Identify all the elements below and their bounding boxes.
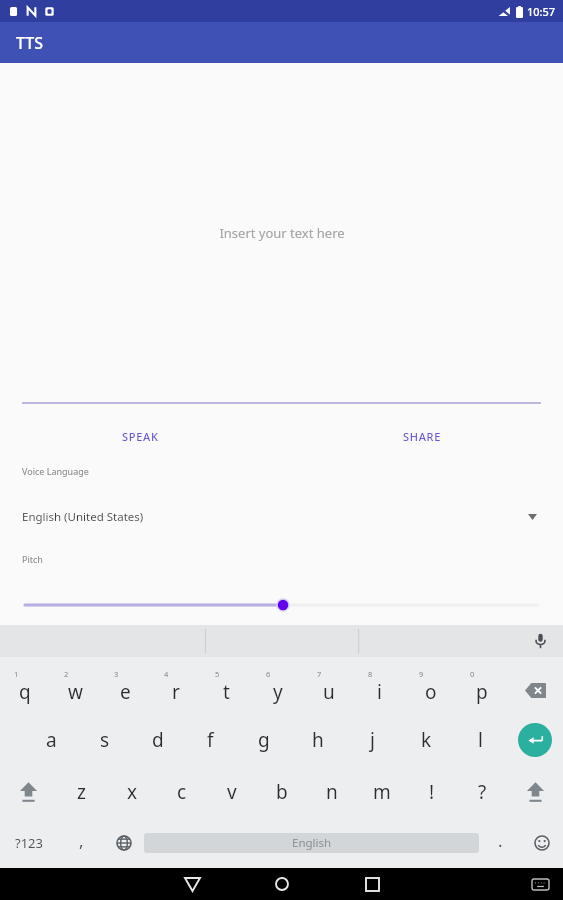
button[interactable]: Back <box>178 870 206 898</box>
button[interactable]: j <box>345 714 399 766</box>
button[interactable]: , <box>58 818 104 868</box>
staticText: ! <box>429 779 435 805</box>
button[interactable]: ?123 <box>0 818 58 868</box>
button[interactable]: 4 <box>150 661 201 714</box>
button[interactable]: 7 <box>303 661 354 714</box>
staticText: t <box>223 679 230 705</box>
staticText: u <box>323 679 335 705</box>
staticText: a <box>46 727 57 753</box>
button[interactable]: ! <box>407 766 457 818</box>
button[interactable]: h <box>291 714 345 766</box>
staticText: 1 <box>14 669 19 679</box>
button[interactable]: Insert your text here <box>0 63 563 402</box>
staticText: 10:57 <box>527 4 556 19</box>
staticText: h <box>312 727 324 753</box>
staticText: 5 <box>215 669 220 679</box>
button[interactable]: 1 <box>0 661 50 714</box>
button[interactable]: English <box>144 833 479 853</box>
staticText: . <box>498 829 503 852</box>
staticText: 3 <box>114 669 119 679</box>
staticText: 9 <box>419 669 424 679</box>
button[interactable]: s <box>78 714 131 766</box>
staticText: p <box>476 679 488 705</box>
staticText: SPEAK <box>122 429 159 444</box>
button[interactable]: 5 <box>201 661 252 714</box>
staticText: j <box>370 727 375 753</box>
button[interactable]: Pitch slider <box>0 595 563 615</box>
staticText: o <box>425 679 437 705</box>
staticText: , <box>79 829 84 852</box>
button[interactable]: Voice input <box>529 630 551 652</box>
staticText: TTS <box>16 32 44 54</box>
button[interactable]: 3 <box>100 661 150 714</box>
button[interactable]: c <box>157 766 207 818</box>
staticText: l <box>478 727 483 753</box>
button[interactable]: b <box>257 766 307 818</box>
staticText: d <box>152 727 164 753</box>
button[interactable]: k <box>399 714 453 766</box>
button[interactable]: d <box>131 714 184 766</box>
button[interactable]: Change language <box>104 818 144 868</box>
button[interactable]: f <box>184 714 237 766</box>
staticText: e <box>120 679 131 705</box>
button[interactable]: . <box>479 818 521 868</box>
button[interactable]: 6 <box>252 661 303 714</box>
staticText: v <box>227 779 237 805</box>
staticText: m <box>373 779 391 805</box>
button[interactable]: a <box>25 714 78 766</box>
button[interactable]: Shift <box>507 766 563 818</box>
staticText: SHARE <box>403 429 442 444</box>
button[interactable]: x <box>107 766 157 818</box>
button[interactable]: v <box>207 766 257 818</box>
button[interactable]: SPEAK <box>0 422 281 450</box>
staticText: Pitch <box>22 553 43 565</box>
button[interactable]: n <box>307 766 357 818</box>
button[interactable]: 8 <box>354 661 405 714</box>
staticText: 0 <box>470 669 475 679</box>
staticText: b <box>276 779 288 805</box>
button[interactable]: Shift <box>0 766 56 818</box>
button[interactable]: ? <box>457 766 507 818</box>
staticText: 8 <box>368 669 373 679</box>
button[interactable]: g <box>237 714 291 766</box>
button[interactable]: Switch keyboard <box>527 871 553 897</box>
staticText: i <box>377 679 382 705</box>
button[interactable]: 0 <box>456 661 507 714</box>
staticText: k <box>421 727 432 753</box>
staticText: Insert your text here <box>219 224 345 242</box>
button[interactable]: Recent apps <box>358 870 386 898</box>
button[interactable]: 2 <box>50 661 100 714</box>
staticText: ? <box>478 779 487 805</box>
button[interactable]: z <box>56 766 107 818</box>
button[interactable]: SHARE <box>281 422 563 450</box>
staticText: y <box>273 679 283 705</box>
staticText: w <box>68 679 83 705</box>
button[interactable]: m <box>357 766 407 818</box>
staticText: r <box>172 679 180 705</box>
staticText: x <box>127 779 138 805</box>
staticText: 4 <box>164 669 169 679</box>
staticText: 2 <box>64 669 69 679</box>
staticText: 7 <box>317 669 322 679</box>
button[interactable]: l <box>453 714 507 766</box>
button[interactable]: English (United States) <box>0 505 563 529</box>
staticText: English <box>292 835 332 851</box>
button[interactable]: Enter <box>507 714 563 766</box>
staticText: q <box>19 679 31 705</box>
staticText: z <box>77 779 86 805</box>
staticText: s <box>100 727 110 753</box>
staticText: g <box>258 727 270 753</box>
staticText: c <box>177 779 187 805</box>
staticText: ?123 <box>15 834 43 852</box>
button[interactable]: Home <box>268 870 296 898</box>
staticText: Voice Language <box>22 465 89 477</box>
staticText: English (United States) <box>22 509 144 525</box>
staticText: n <box>326 779 338 805</box>
button[interactable]: Backspace <box>507 661 563 714</box>
button[interactable]: Emoji <box>521 818 563 868</box>
button[interactable]: 9 <box>405 661 456 714</box>
staticText: 6 <box>266 669 271 679</box>
staticText: f <box>207 727 214 753</box>
